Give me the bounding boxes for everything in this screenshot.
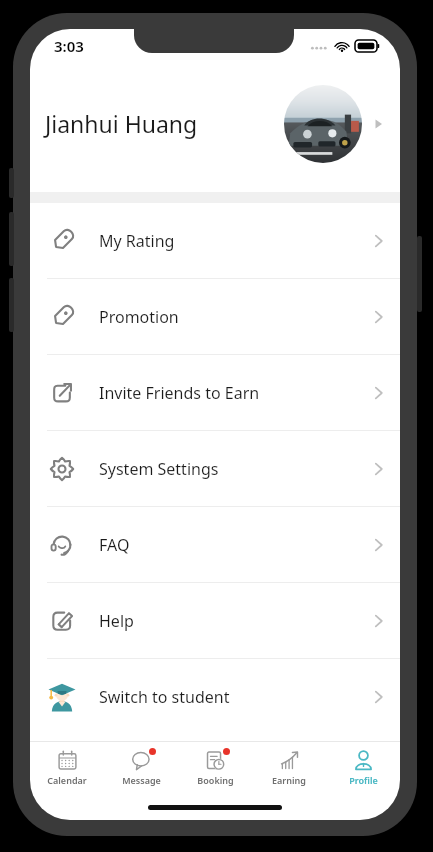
button[interactable]: My Rating [30,203,400,278]
staticText: Help [99,610,134,632]
button[interactable]: Invite Friends to Earn [30,355,400,430]
button[interactable]: Profile [326,742,400,794]
button[interactable]: Earning [252,742,326,794]
staticText: Message [122,774,161,786]
staticText: Calendar [47,774,87,786]
staticText: Invite Friends to Earn [99,382,260,404]
button[interactable]: Help [30,583,400,658]
staticText: Promotion [99,306,179,328]
staticText: Profile [349,774,378,786]
staticText: My Rating [99,230,175,252]
staticText: System Settings [99,458,219,480]
staticText: Booking [197,774,234,786]
button[interactable]: FAQ [30,507,400,582]
button[interactable]: Jianhui Huang [30,63,400,192]
staticText: 3:03 [54,36,84,56]
button[interactable]: Switch to student [30,659,400,734]
staticText: Earning [272,774,306,786]
button[interactable]: Calendar [30,742,104,794]
staticText: Jianhui Huang [45,108,198,139]
button[interactable]: Message [104,742,178,794]
button[interactable]: System Settings [30,431,400,506]
button[interactable]: Booking [178,742,252,794]
staticText: Switch to student [99,686,230,708]
button[interactable]: Promotion [30,279,400,354]
staticText: FAQ [99,534,130,556]
